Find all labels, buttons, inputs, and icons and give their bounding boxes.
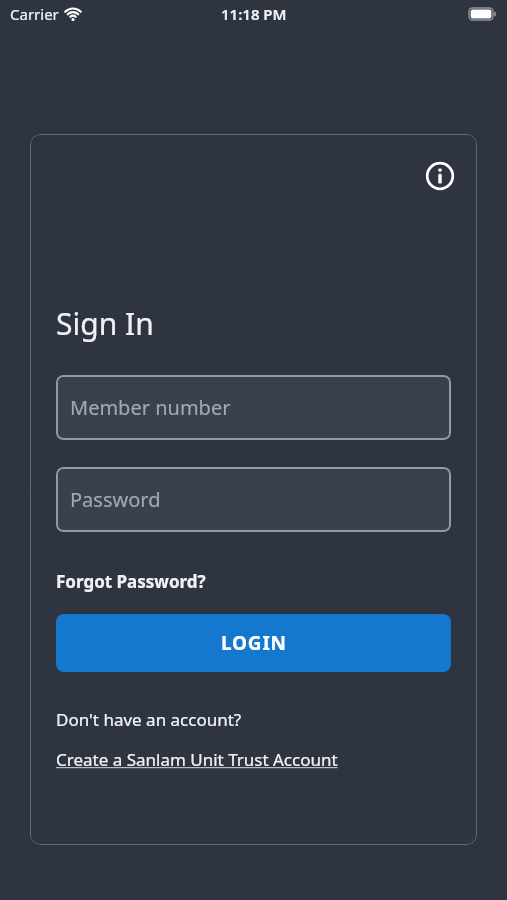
button[interactable] — [423, 159, 457, 193]
button[interactable]: LOGIN — [56, 614, 451, 672]
button[interactable]: Create a Sanlam Unit Trust Account — [56, 748, 338, 771]
staticText: 11:18 PM — [221, 4, 287, 24]
staticText: Don't have an account? — [56, 708, 242, 731]
button[interactable]: Member number — [56, 375, 451, 440]
button[interactable]: Forgot Password? — [56, 570, 206, 593]
staticText: LOGIN — [221, 630, 287, 656]
staticText: Password — [70, 486, 161, 513]
button[interactable]: Password — [56, 467, 451, 532]
staticText: Sign In — [56, 303, 154, 344]
staticText: Member number — [70, 394, 231, 421]
staticText: Carrier — [10, 4, 59, 24]
